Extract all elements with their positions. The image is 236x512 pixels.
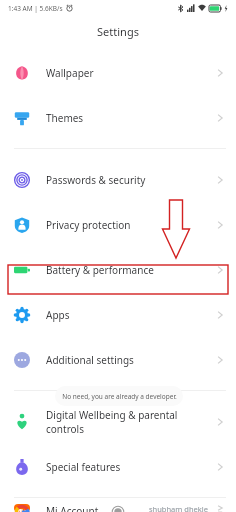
button[interactable]: Additional settings: [0, 337, 236, 382]
button[interactable]: Apps: [0, 292, 236, 337]
button[interactable]: Special features: [0, 444, 236, 489]
button[interactable]: Wallpaper: [0, 50, 236, 95]
staticText: Additional settings: [46, 353, 214, 367]
staticText: shubham dhekle: [149, 504, 208, 512]
staticText: Themes: [46, 111, 214, 125]
staticText: No need, you are already a developer.: [62, 392, 177, 401]
staticText: 1:43 AM | 5.6KB/s: [8, 4, 63, 13]
staticText: Apps: [46, 308, 214, 322]
staticText: Settings: [97, 24, 139, 39]
staticText: Mi Account: [46, 504, 149, 512]
staticText: Digital Wellbeing & parental controls: [46, 408, 214, 436]
button[interactable]: Themes: [0, 95, 236, 140]
staticText: Special features: [46, 460, 214, 474]
button[interactable]: Passwords & security: [0, 157, 236, 202]
button[interactable]: Privacy protection: [0, 202, 236, 247]
staticText: Privacy protection: [46, 218, 214, 232]
button[interactable]: Mi Account: [0, 504, 236, 512]
button[interactable]: Battery & performance: [0, 247, 236, 292]
staticText: Passwords & security: [46, 173, 214, 187]
button[interactable]: Digital Wellbeing & parental controls: [0, 399, 236, 444]
staticText: Wallpaper: [46, 66, 214, 80]
staticText: Battery & performance: [46, 263, 214, 277]
